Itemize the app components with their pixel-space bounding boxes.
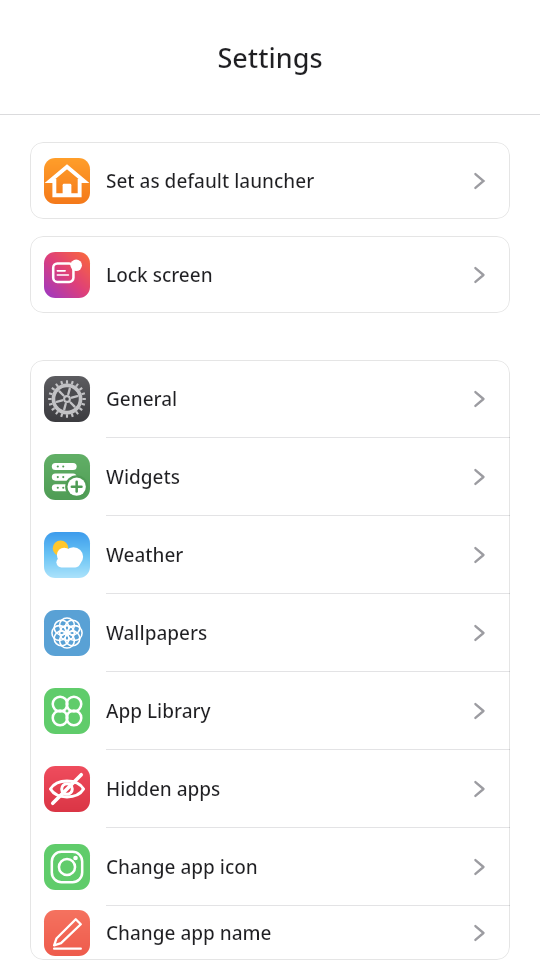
- other: Open Change app icon: [464, 852, 494, 882]
- staticText: Set as default launcher: [106, 168, 315, 194]
- staticText: Hidden apps: [106, 776, 221, 802]
- button[interactable]: Widgets: [30, 437, 510, 515]
- button[interactable]: Weather: [30, 515, 510, 593]
- button[interactable]: Wallpapers: [30, 593, 510, 671]
- staticText: Lock screen: [106, 262, 213, 288]
- staticText: General: [106, 386, 178, 412]
- other: Open Change app name: [464, 918, 494, 948]
- button[interactable]: Lock screen: [30, 236, 510, 313]
- other: Open App Library: [464, 696, 494, 726]
- button[interactable]: Change app name: [30, 905, 510, 960]
- staticText: Widgets: [106, 464, 180, 490]
- staticText: Settings: [217, 39, 323, 76]
- other: Open Set as default launcher: [464, 166, 494, 196]
- other: Open Lock screen: [464, 260, 494, 290]
- button[interactable]: Set as default launcher: [30, 142, 510, 219]
- other: Open General: [464, 384, 494, 414]
- staticText: Weather: [106, 542, 184, 568]
- other: Open Hidden apps: [464, 774, 494, 804]
- button[interactable]: General: [30, 360, 510, 437]
- other: Open Widgets: [464, 462, 494, 492]
- button[interactable]: Change app icon: [30, 827, 510, 905]
- staticText: Wallpapers: [106, 620, 208, 646]
- staticText: Change app name: [106, 920, 272, 946]
- other: Open Wallpapers: [464, 618, 494, 648]
- other: Open Weather: [464, 540, 494, 570]
- button[interactable]: Hidden apps: [30, 749, 510, 827]
- button[interactable]: App Library: [30, 671, 510, 749]
- staticText: App Library: [106, 698, 211, 724]
- staticText: Change app icon: [106, 854, 258, 880]
